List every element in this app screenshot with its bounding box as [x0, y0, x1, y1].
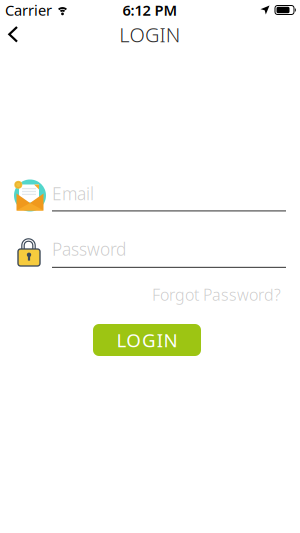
button[interactable]: LOGIN	[93, 324, 201, 356]
button[interactable]: Forgot Password?	[152, 284, 281, 305]
staticText: LOGIN	[119, 21, 181, 48]
staticText: Email	[52, 182, 94, 205]
button[interactable]: Password text field	[0, 237, 300, 270]
staticText: Password	[52, 237, 126, 260]
staticText: Carrier	[5, 0, 52, 20]
button[interactable]: Email text field	[0, 178, 300, 213]
staticText: Forgot Password?	[152, 284, 281, 305]
staticText: LOGIN	[116, 328, 178, 352]
staticText: 6:12 PM	[122, 0, 177, 20]
button[interactable]: Back	[0, 20, 19, 49]
